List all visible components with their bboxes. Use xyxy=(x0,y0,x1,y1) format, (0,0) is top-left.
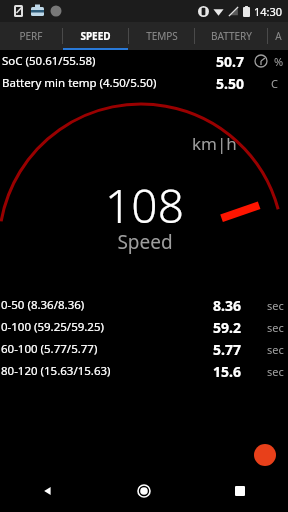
staticText: 15.6 xyxy=(213,362,241,381)
staticText: SPEED xyxy=(80,29,111,43)
button[interactable]: Record xyxy=(254,444,276,466)
staticText: SoC (50.61/55.58) xyxy=(2,53,96,69)
staticText: % xyxy=(274,54,284,69)
staticText: 8.36 xyxy=(213,296,241,315)
staticText: 60-100 (5.77/5.77) xyxy=(1,341,98,357)
staticText: 80-120 (15.63/15.63) xyxy=(1,363,111,379)
button[interactable]: A xyxy=(268,22,288,50)
staticText: BATTERY xyxy=(211,29,252,43)
staticText: C xyxy=(271,76,278,91)
staticText: 5.50 xyxy=(216,74,244,93)
staticText: A xyxy=(275,29,282,43)
button[interactable]: 60-100 (5.77/5.77) xyxy=(0,338,288,360)
staticText: PERF xyxy=(19,29,43,43)
staticText: Battery min temp (4.50/5.50) xyxy=(2,75,157,91)
button[interactable]: Battery min temp (4.50/5.50) xyxy=(0,72,288,94)
staticText: 59.2 xyxy=(213,318,241,337)
staticText: 50.7 xyxy=(216,52,244,71)
staticText: Speed xyxy=(117,229,173,255)
staticText: sec xyxy=(267,342,284,357)
staticText: 108 xyxy=(105,174,184,237)
button[interactable]: SoC (50.61/55.58) xyxy=(0,50,288,72)
staticText: sec xyxy=(267,364,284,379)
button[interactable]: PERF xyxy=(0,22,62,50)
staticText: 0-50 (8.36/8.36) xyxy=(1,297,85,313)
button[interactable]: 80-120 (15.63/15.63) xyxy=(0,360,288,382)
staticText: sec xyxy=(267,320,284,335)
staticText: 0-100 (59.25/59.25) xyxy=(1,319,104,335)
staticText: sec xyxy=(267,298,284,313)
staticText: 5.77 xyxy=(213,340,241,359)
button[interactable]: 0-100 (59.25/59.25) xyxy=(0,316,288,338)
staticText: TEMPS xyxy=(146,29,178,43)
button[interactable]: SPEED xyxy=(63,22,128,50)
button[interactable]: Back xyxy=(28,471,68,511)
button[interactable]: Home xyxy=(124,471,164,511)
staticText: km|h xyxy=(192,132,237,155)
button[interactable]: Recents xyxy=(220,471,260,511)
staticText: 14:30 xyxy=(254,4,283,19)
button[interactable]: BATTERY xyxy=(195,22,267,50)
button[interactable]: TEMPS xyxy=(129,22,194,50)
button[interactable]: 0-50 (8.36/8.36) xyxy=(0,294,288,316)
